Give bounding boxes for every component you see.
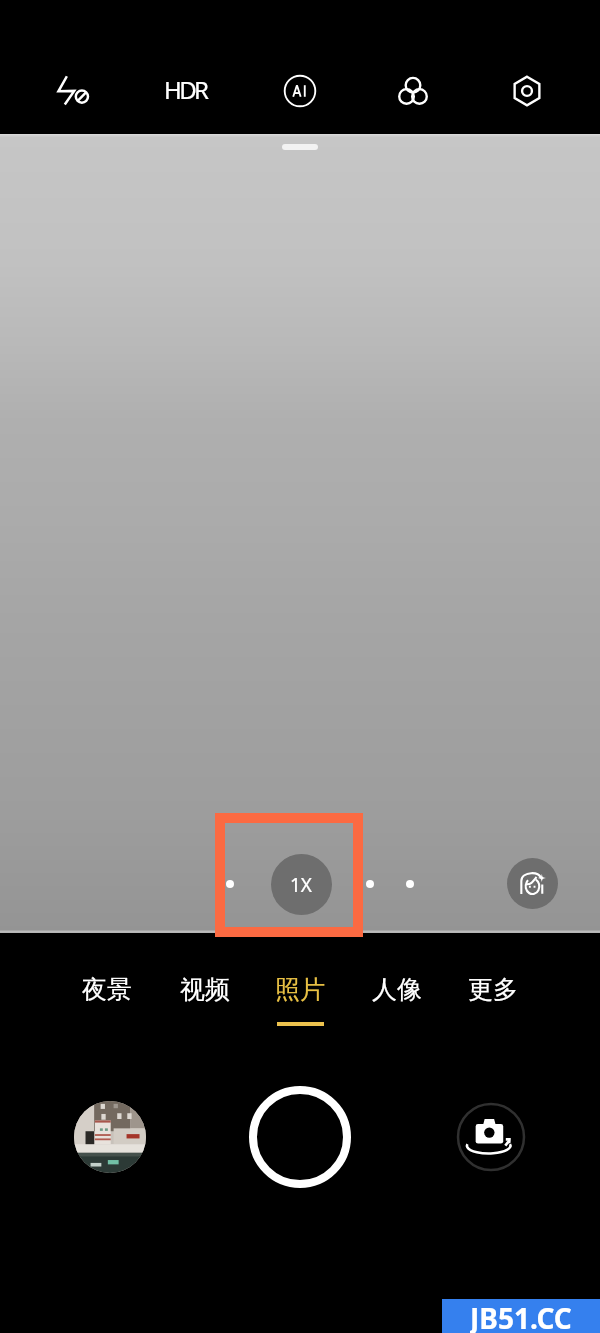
button[interactable]: Beauty [507,858,558,909]
staticText: 人像 [372,974,422,1005]
staticText: 照片 [275,974,325,1005]
button[interactable]: 夜景 [67,974,147,1022]
button[interactable]: 照片 [260,974,340,1026]
button[interactable]: 更多 [453,974,533,1022]
button[interactable]: Shutter [247,1084,353,1190]
staticText: JB51.CC [470,1299,572,1333]
button[interactable]: Flash off [44,63,100,119]
button[interactable]: Switch camera [455,1101,527,1173]
staticText: 夜景 [82,974,132,1005]
staticText: HDR [164,73,207,106]
staticText: 1X [290,872,313,898]
button[interactable]: 人像 [357,974,437,1022]
button[interactable]: HDR [153,65,217,113]
button[interactable]: 1X [271,854,332,915]
staticText: 更多 [468,974,518,1005]
button[interactable]: Colour filters [385,63,441,119]
button[interactable]: Settings [499,63,555,119]
staticText: 视频 [180,974,230,1005]
button[interactable]: 视频 [165,974,245,1022]
button[interactable]: Gallery [74,1101,146,1173]
button[interactable]: AI scene detection [272,63,328,119]
